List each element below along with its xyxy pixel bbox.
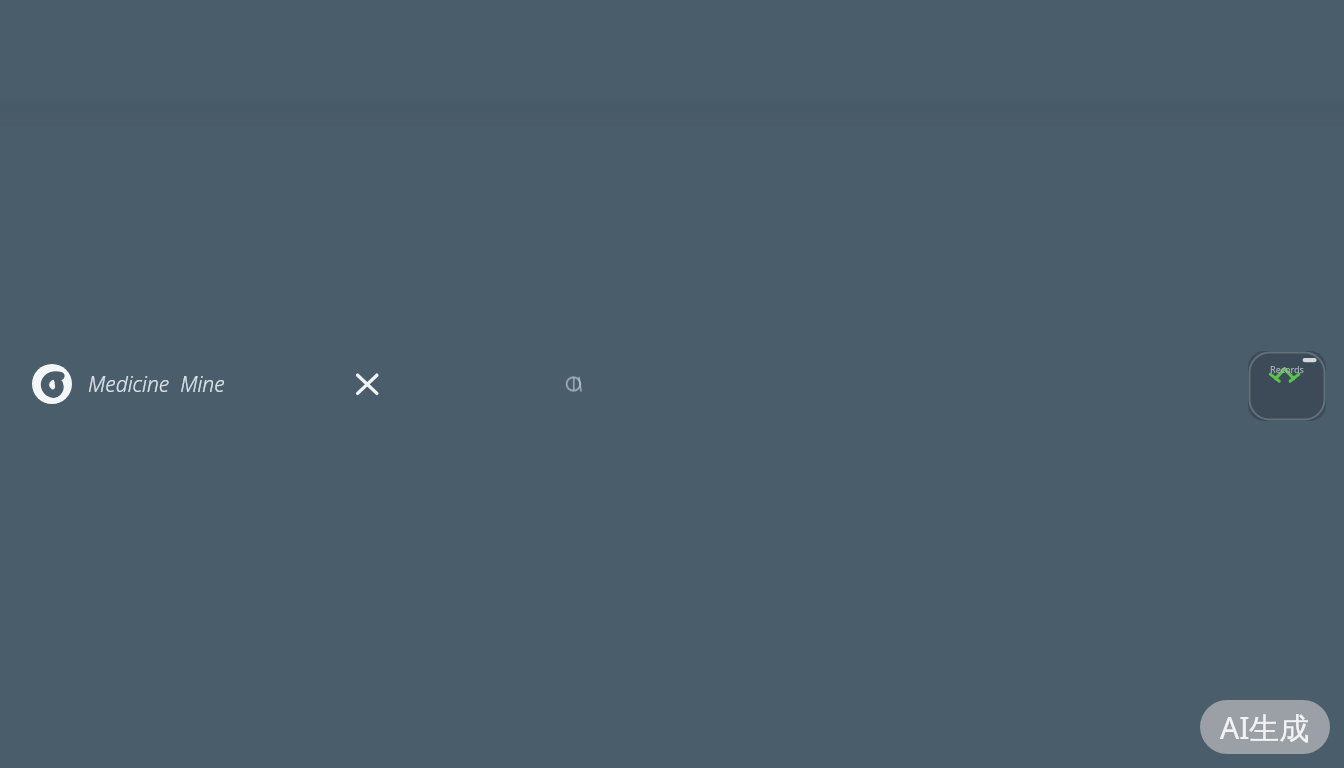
- button[interactable]: Profile badge: [1248, 351, 1326, 421]
- staticText: Records: [1248, 363, 1326, 421]
- button[interactable]: More: [553, 362, 597, 406]
- button[interactable]: App logo: [32, 364, 72, 404]
- staticText: AI生成: [1220, 707, 1310, 748]
- button[interactable]: Medicine Mine: [88, 370, 225, 399]
- button[interactable]: AI生成: [1200, 700, 1330, 754]
- button[interactable]: Close: [345, 362, 389, 406]
